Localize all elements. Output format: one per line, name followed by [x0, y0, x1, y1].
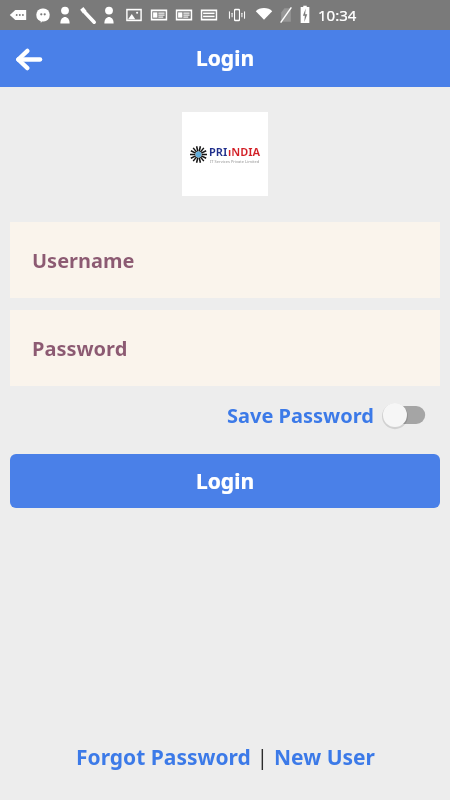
staticText: Username: [32, 247, 135, 274]
staticText: Password: [32, 335, 128, 362]
button[interactable]: Forgot Password: [76, 743, 251, 772]
button[interactable]: New User: [274, 743, 375, 772]
staticText: 10:34: [318, 5, 357, 25]
button[interactable]: Login: [10, 454, 440, 508]
other: Save Password toggle: [382, 400, 430, 430]
button[interactable]: Save Password: [227, 396, 430, 434]
staticText: Login: [196, 467, 255, 496]
button[interactable]: Back: [4, 35, 52, 83]
button[interactable]: Password: [10, 310, 440, 386]
staticText: ıNDIA: [228, 144, 261, 159]
staticText: PRI: [209, 144, 228, 159]
staticText: IT Services Private Limited: [210, 159, 260, 164]
staticText: Save Password: [227, 402, 374, 429]
staticText: Login: [196, 44, 255, 73]
staticText: |: [251, 743, 274, 772]
button[interactable]: Username: [10, 222, 440, 298]
